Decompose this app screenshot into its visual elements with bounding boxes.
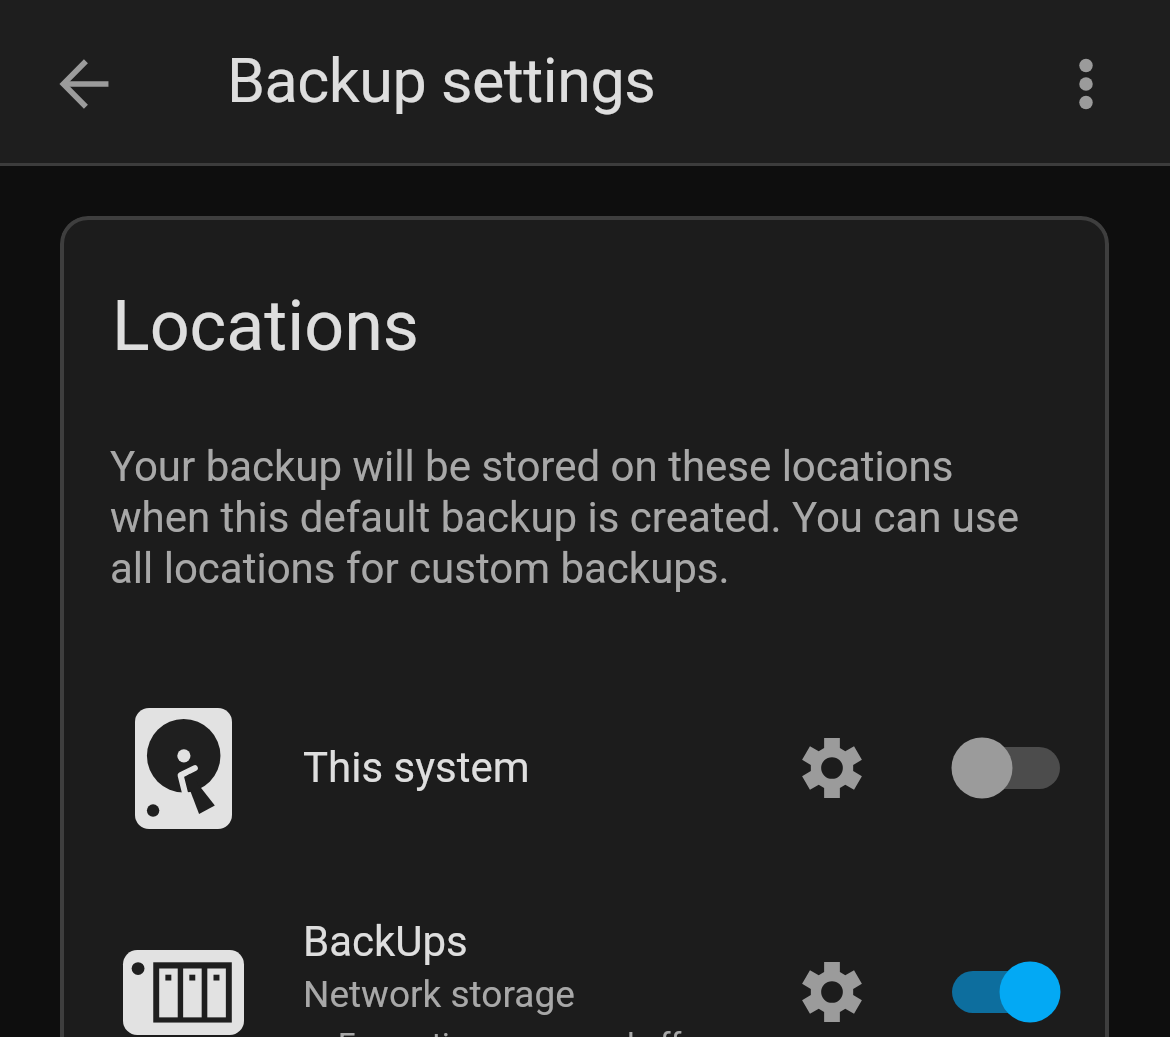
staticText: Backup settings [227,45,656,116]
button[interactable]: Off [934,728,1064,808]
button[interactable]: Settings [792,728,872,808]
button[interactable]: BackUps [60,927,1109,1037]
staticText: Locations [112,285,419,367]
staticText: Your backup will be stored on these loca… [110,442,1040,594]
button[interactable]: More options [1056,39,1116,129]
button[interactable]: On [934,952,1064,1032]
button[interactable]: Back [51,48,123,120]
staticText: This system [303,743,530,792]
staticText: Encryption: password off [338,1026,682,1037]
staticText: Network storage [303,973,575,1016]
staticText: BackUps [303,917,468,966]
button[interactable]: This system [60,703,1109,833]
button[interactable]: Settings [792,952,872,1032]
